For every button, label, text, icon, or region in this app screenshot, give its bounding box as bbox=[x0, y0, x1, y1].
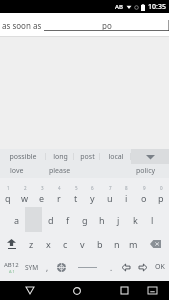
button[interactable]: 5 bbox=[67, 182, 84, 207]
button[interactable]: Space bbox=[70, 256, 105, 278]
button[interactable]: Recent apps bbox=[111, 281, 137, 300]
staticText: h bbox=[99, 214, 105, 226]
staticText: w bbox=[21, 192, 29, 204]
button[interactable]: Shift bbox=[0, 232, 23, 256]
button[interactable]: v bbox=[74, 232, 91, 256]
staticText: 5 bbox=[75, 185, 78, 191]
button[interactable]: 9 bbox=[135, 182, 152, 207]
staticText: 3 bbox=[41, 185, 44, 191]
staticText: y bbox=[90, 192, 95, 204]
staticText: n bbox=[114, 238, 120, 250]
button[interactable]: 3 bbox=[33, 182, 50, 207]
staticText: v bbox=[80, 238, 85, 250]
button[interactable]: 4 bbox=[50, 182, 67, 207]
staticText: j bbox=[117, 214, 120, 226]
button[interactable]: , bbox=[41, 256, 53, 278]
button[interactable]: love bbox=[0, 164, 34, 178]
button[interactable]: 1 bbox=[0, 182, 16, 207]
button[interactable]: 2 bbox=[16, 182, 33, 207]
button[interactable]: . bbox=[105, 256, 117, 278]
staticText: 8 bbox=[125, 185, 128, 191]
staticText: OK bbox=[155, 262, 165, 272]
button[interactable]: post bbox=[74, 149, 100, 164]
button[interactable]: f bbox=[59, 207, 76, 232]
button[interactable]: g bbox=[76, 207, 93, 232]
button[interactable]: SYM bbox=[22, 256, 41, 278]
staticText: AB12 bbox=[4, 261, 19, 269]
staticText: e bbox=[39, 192, 45, 204]
staticText: AB bbox=[115, 3, 123, 11]
button[interactable]: Move left bbox=[117, 256, 134, 278]
staticText: c bbox=[63, 238, 68, 250]
staticText: policy bbox=[136, 166, 156, 176]
button[interactable]: Backspace bbox=[142, 232, 169, 256]
staticText: po bbox=[102, 20, 112, 31]
button[interactable]: Expand suggestions bbox=[131, 149, 169, 164]
button[interactable]: possible bbox=[0, 149, 46, 164]
staticText: o bbox=[141, 192, 147, 204]
button[interactable]: n bbox=[108, 232, 125, 256]
staticText: b bbox=[97, 238, 103, 250]
staticText: , bbox=[46, 262, 49, 273]
staticText: 1 bbox=[7, 185, 10, 191]
staticText: f bbox=[66, 214, 70, 226]
button[interactable]: k bbox=[127, 207, 144, 232]
button[interactable]: b bbox=[91, 232, 108, 256]
button[interactable]: Move right bbox=[134, 256, 151, 278]
staticText: u bbox=[107, 192, 113, 204]
staticText: post bbox=[80, 152, 95, 162]
button[interactable]: Change language bbox=[53, 256, 70, 278]
staticText: i bbox=[125, 192, 128, 204]
button[interactable]: long bbox=[46, 149, 74, 164]
staticText: 4 bbox=[58, 185, 61, 191]
button[interactable]: AB12 bbox=[0, 256, 22, 278]
staticText: l bbox=[151, 214, 154, 226]
staticText: 9 bbox=[143, 185, 146, 191]
button[interactable]: x bbox=[40, 232, 57, 256]
staticText: a bbox=[14, 214, 20, 226]
staticText: as soon as bbox=[2, 20, 44, 31]
staticText: k bbox=[133, 214, 138, 226]
button[interactable]: a bbox=[8, 207, 25, 232]
button[interactable]: j bbox=[110, 207, 127, 232]
button[interactable]: z bbox=[23, 232, 40, 256]
staticText: t bbox=[74, 192, 78, 204]
button[interactable]: c bbox=[57, 232, 74, 256]
button[interactable]: Hide keyboard bbox=[17, 281, 43, 300]
staticText: 6 bbox=[91, 185, 94, 191]
staticText: local bbox=[108, 152, 124, 162]
staticText: d bbox=[48, 214, 54, 226]
button[interactable]: Switch keyboard bbox=[141, 281, 163, 300]
button[interactable]: d bbox=[42, 207, 59, 232]
staticText: g bbox=[82, 214, 88, 226]
button[interactable]: OK bbox=[151, 256, 169, 278]
staticText: A 1 bbox=[9, 269, 15, 274]
staticText: 10:35 bbox=[148, 2, 166, 12]
staticText: r bbox=[57, 192, 61, 204]
staticText: . bbox=[110, 262, 113, 273]
button[interactable]: m bbox=[125, 232, 142, 256]
button[interactable]: 8 bbox=[118, 182, 135, 207]
staticText: z bbox=[29, 238, 34, 250]
button[interactable]: 7 bbox=[101, 182, 118, 207]
staticText: long bbox=[53, 152, 68, 162]
button[interactable]: Home bbox=[64, 281, 90, 300]
staticText: 0 bbox=[160, 185, 163, 191]
staticText: please bbox=[49, 166, 71, 176]
staticText: love bbox=[10, 166, 24, 176]
button[interactable]: 6 bbox=[84, 182, 101, 207]
staticText: p bbox=[158, 192, 164, 204]
button[interactable]: 0 bbox=[152, 182, 169, 207]
button[interactable]: please bbox=[34, 164, 85, 178]
staticText: q bbox=[5, 192, 11, 204]
staticText: SYM bbox=[25, 263, 39, 272]
staticText: m bbox=[129, 238, 138, 250]
staticText: possible bbox=[9, 152, 37, 162]
button[interactable]: policy bbox=[122, 164, 169, 178]
button[interactable]: local bbox=[100, 149, 131, 164]
button[interactable]: h bbox=[93, 207, 110, 232]
button[interactable]: l bbox=[144, 207, 161, 232]
staticText: 2 bbox=[24, 185, 27, 191]
